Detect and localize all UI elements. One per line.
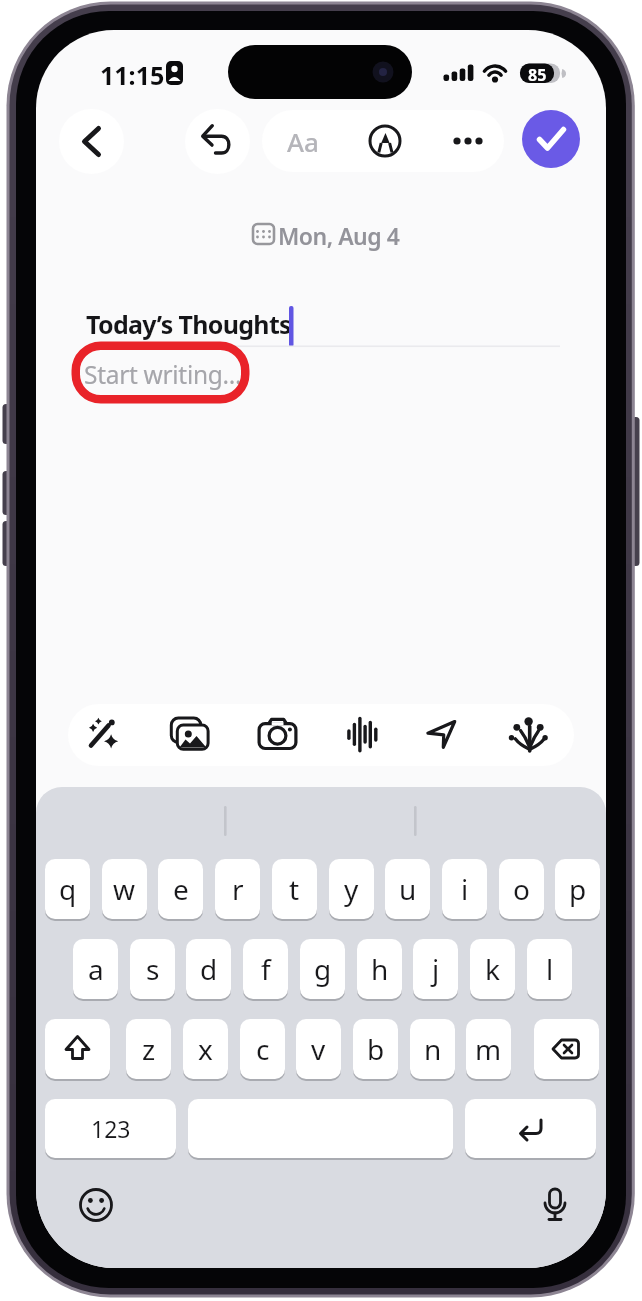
staticText: 11:15 [100,58,165,92]
staticText: y [344,870,359,908]
button[interactable]: u [385,859,430,919]
button[interactable] [45,1019,110,1079]
staticText: x [198,1030,213,1068]
button[interactable] [360,116,410,166]
button[interactable]: e [158,859,203,919]
button[interactable] [188,1099,453,1158]
button[interactable]: r [215,859,260,919]
button[interactable]: n [410,1019,455,1079]
button[interactable]: k [470,939,515,999]
button[interactable]: b [353,1019,398,1079]
staticText: a [88,950,104,988]
button[interactable]: i [442,859,487,919]
button[interactable] [59,109,124,174]
button[interactable]: v [296,1019,341,1079]
button[interactable] [82,707,138,763]
button[interactable]: p [555,859,600,919]
button[interactable]: f [243,939,288,999]
button[interactable]: a [73,939,118,999]
staticText: l [546,950,554,988]
button[interactable]: c [240,1019,285,1079]
staticText: d [200,950,218,988]
staticText: n [424,1030,442,1068]
staticText: Today’s Thoughts [86,307,291,341]
button[interactable] [534,1019,599,1079]
button[interactable] [76,345,256,405]
button[interactable]: t [272,859,317,919]
button[interactable]: m [466,1019,511,1079]
button[interactable] [253,707,309,763]
staticText: 85 [528,64,547,86]
button[interactable]: l [527,939,572,999]
staticText: w [113,870,136,908]
staticText: z [142,1030,156,1068]
staticText: o [513,870,530,908]
staticText: t [289,870,300,908]
button[interactable]: x [183,1019,228,1079]
staticText: g [314,950,332,988]
button[interactable]: q [45,859,90,919]
button[interactable] [443,116,493,166]
staticText: p [569,870,587,908]
staticText: h [371,950,389,988]
staticText: m [475,1030,502,1068]
staticText: Aa [287,124,319,159]
staticText: v [311,1030,326,1068]
button[interactable]: 123 [45,1099,176,1158]
button[interactable]: w [102,859,147,919]
button[interactable]: h [357,939,402,999]
button[interactable] [166,707,222,763]
staticText: q [59,870,77,908]
button[interactable]: j [413,939,458,999]
button[interactable]: z [126,1019,171,1079]
button[interactable] [246,216,406,250]
button[interactable]: y [329,859,374,919]
staticText: j [432,950,440,988]
button[interactable]: g [300,939,345,999]
button[interactable] [81,300,561,350]
staticText: u [399,870,417,908]
button[interactable] [533,1183,577,1227]
staticText: e [173,870,189,908]
staticText: i [461,870,469,908]
button[interactable] [74,1183,118,1227]
button[interactable] [522,110,580,168]
button[interactable] [185,109,250,174]
button[interactable]: o [499,859,544,919]
button[interactable] [337,707,393,763]
button[interactable] [465,1099,596,1158]
button[interactable] [415,707,471,763]
staticText: c [256,1030,270,1068]
staticText: Start writing... [84,358,242,391]
staticText: Mon, Aug 4 [278,220,400,251]
staticText: s [146,950,160,988]
staticText: 123 [91,1113,131,1144]
staticText: k [485,950,500,988]
staticText: b [367,1030,385,1068]
button[interactable]: s [130,939,175,999]
staticText: r [232,870,244,908]
button[interactable]: Aa [273,112,333,170]
button[interactable]: d [186,939,231,999]
button[interactable] [502,707,558,763]
staticText: f [261,950,271,988]
